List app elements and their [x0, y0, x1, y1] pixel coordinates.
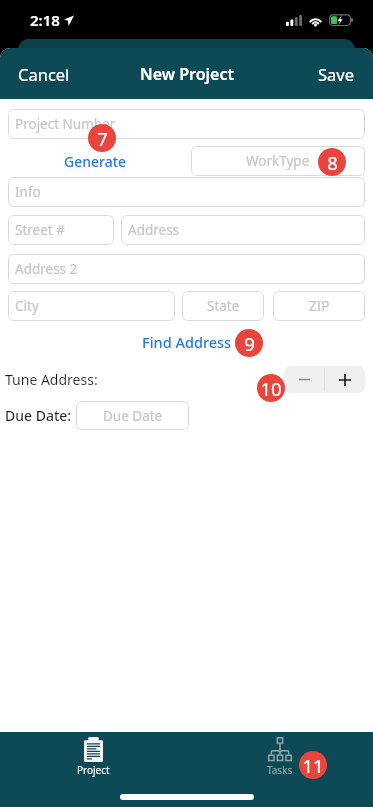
button[interactable]: Address 2 [8, 254, 365, 284]
staticText: Find Address [142, 332, 232, 352]
button[interactable]: Street # [8, 215, 114, 245]
button[interactable]: Due Date [76, 401, 189, 430]
staticText: 2:18 [30, 10, 60, 30]
staticText: City [15, 297, 39, 315]
button[interactable]: Tasks [253, 737, 307, 777]
staticText: Tune Address: [5, 370, 98, 389]
staticText: Cancel [18, 63, 70, 85]
button[interactable]: Save [306, 48, 373, 99]
button[interactable]: Increase [325, 366, 365, 393]
staticText: Tasks [267, 763, 293, 777]
staticText: 8 [327, 150, 338, 175]
button[interactable]: Project [63, 737, 124, 777]
button[interactable]: Address [121, 215, 365, 245]
staticText: 7 [97, 126, 108, 151]
staticText: Project [77, 763, 110, 777]
staticText: Street # [15, 221, 65, 239]
button[interactable]: Decrease [284, 366, 324, 393]
staticText: Address 2 [15, 260, 78, 278]
button[interactable]: Find Address [136, 330, 238, 354]
staticText: 11 [302, 753, 324, 778]
button[interactable]: ZIP [273, 291, 365, 321]
staticText: Due Date [103, 407, 163, 425]
staticText: 10 [260, 376, 282, 401]
staticText: ZIP [309, 297, 330, 315]
button[interactable]: WorkType [191, 146, 365, 176]
staticText: State [207, 297, 240, 315]
staticText: Due Date: [5, 406, 72, 425]
button[interactable]: City [8, 291, 175, 321]
staticText: Info [15, 183, 41, 201]
staticText: 9 [244, 331, 255, 356]
staticText: Address [128, 221, 180, 239]
staticText: Generate [64, 152, 127, 171]
button[interactable]: Cancel [0, 48, 82, 99]
button[interactable]: State [182, 291, 264, 321]
button[interactable]: Generate [58, 146, 133, 176]
staticText: Save [318, 63, 355, 85]
button[interactable]: Project Number [8, 109, 365, 139]
staticText: New Project [140, 63, 234, 85]
staticText: WorkType [246, 152, 310, 170]
staticText: Project Number [15, 115, 116, 133]
button[interactable]: Info [8, 177, 365, 207]
